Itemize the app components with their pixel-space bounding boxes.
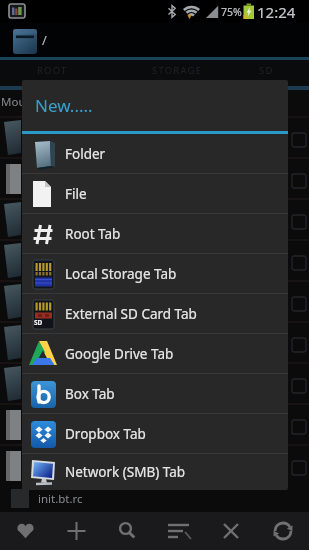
staticText: Folder xyxy=(65,145,106,163)
staticText: / xyxy=(42,31,47,49)
button[interactable] xyxy=(0,512,51,550)
staticText: Google Drive Tab xyxy=(65,345,174,363)
button[interactable]: Local Storage Tab xyxy=(22,254,288,293)
staticText: External SD Card Tab xyxy=(65,305,197,323)
button[interactable] xyxy=(257,512,309,550)
staticText: File xyxy=(65,185,87,203)
button[interactable]: Folder xyxy=(22,134,288,173)
button[interactable]: File xyxy=(22,174,288,213)
staticText: Network (SMB) Tab xyxy=(65,463,186,481)
staticText: ROOT xyxy=(37,64,68,77)
button[interactable]: Box Tab xyxy=(22,374,288,413)
button[interactable] xyxy=(205,512,257,550)
staticText: Dropbox Tab xyxy=(65,425,146,443)
staticText: SD xyxy=(259,64,274,77)
button[interactable]: Root Tab xyxy=(22,214,288,253)
button[interactable] xyxy=(153,512,205,550)
staticText: Local Storage Tab xyxy=(65,265,177,283)
staticText: SD xyxy=(34,318,43,327)
staticText: Box Tab xyxy=(65,385,115,403)
staticText: STORAGE xyxy=(152,64,203,77)
button[interactable]: Dropbox Tab xyxy=(22,414,288,453)
staticText: Root Tab xyxy=(65,225,121,243)
button[interactable]: Google Drive Tab xyxy=(22,334,288,373)
staticText: init.bt.rc xyxy=(38,491,83,507)
staticText: 12:24 xyxy=(257,2,296,22)
button[interactable] xyxy=(51,512,102,550)
staticText: Mou xyxy=(1,94,26,110)
staticText: New..... xyxy=(35,94,93,117)
button[interactable]: SD xyxy=(22,294,288,333)
staticText: 75% xyxy=(221,5,242,19)
button[interactable]: Network (SMB) Tab xyxy=(22,454,288,490)
button[interactable] xyxy=(102,512,153,550)
